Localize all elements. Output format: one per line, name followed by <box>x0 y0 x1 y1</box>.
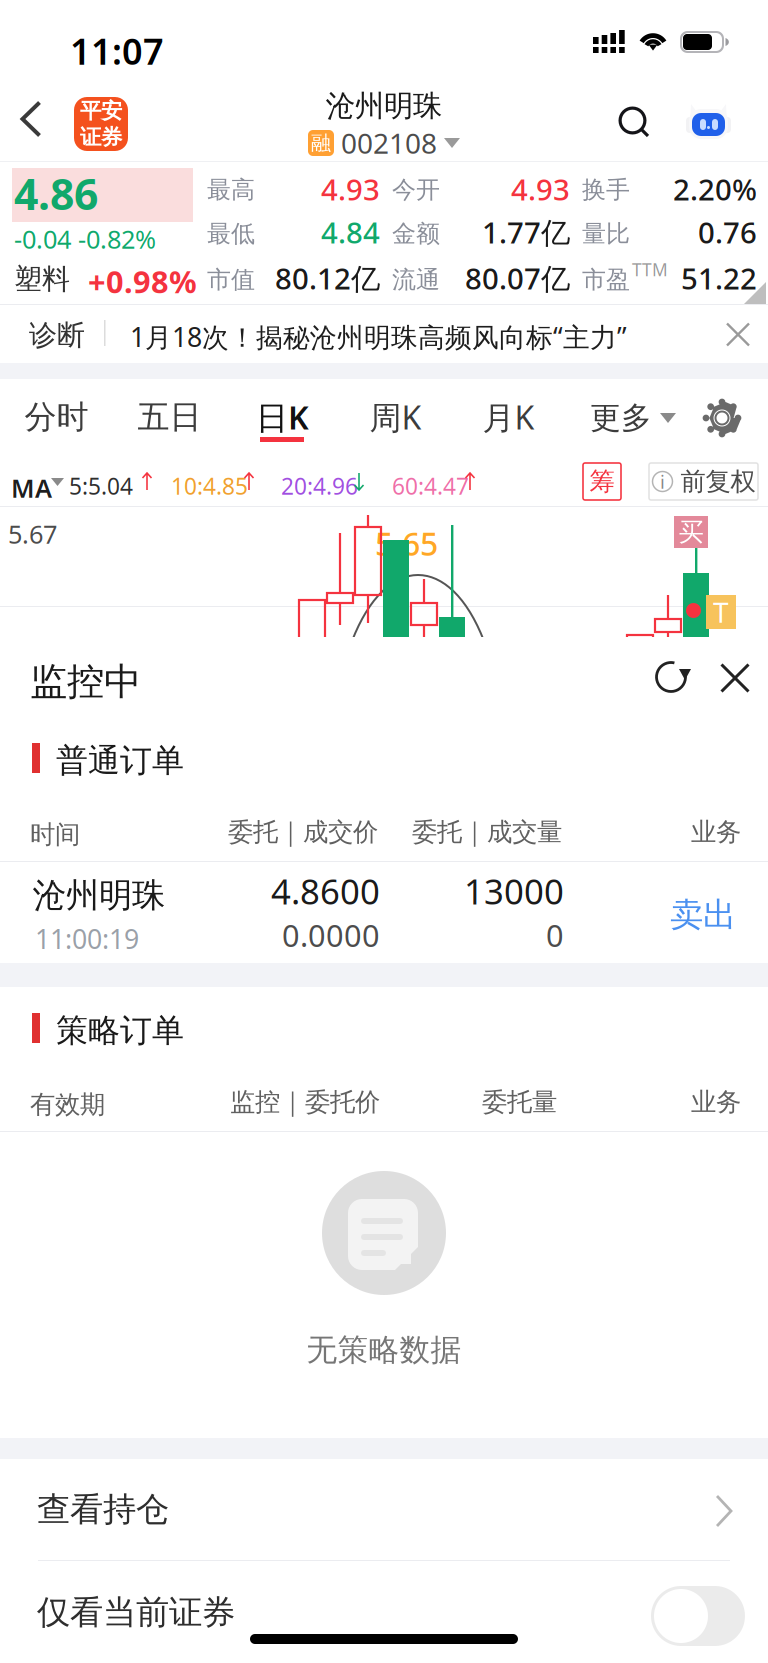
staticText: 诊断 <box>29 318 85 352</box>
staticText: 80.12亿 <box>275 258 380 297</box>
staticText: 融 <box>311 131 331 155</box>
button[interactable]: 返回 <box>0 76 62 162</box>
staticText: 0.0000 <box>282 915 380 955</box>
staticText: +0.98% <box>88 261 197 302</box>
button[interactable]: 设置 <box>682 379 762 457</box>
staticText: 1月18次！揭秘沧州明珠高频风向标“主力” <box>130 319 627 354</box>
staticText: 最高 <box>207 175 255 204</box>
staticText: MA <box>11 471 52 505</box>
staticText: 市盈 <box>582 265 630 294</box>
staticText: T <box>713 593 729 631</box>
staticText: 5:5.04 <box>69 471 133 501</box>
staticText: 业务 <box>691 1086 741 1117</box>
staticText: 今开 <box>392 175 440 204</box>
button[interactable]: 搜索 <box>597 76 679 162</box>
button[interactable]: 仅看当前证券 <box>651 1586 745 1646</box>
staticText: 4.86 <box>14 165 98 222</box>
staticText: 13000 <box>464 868 564 914</box>
button[interactable]: 平安证券 <box>74 97 128 151</box>
staticText: 2.20% <box>673 169 757 208</box>
staticText: 金额 <box>392 219 440 248</box>
staticText: 0 <box>546 915 564 955</box>
button[interactable]: 智能助手 <box>661 76 743 162</box>
staticText: 前复权 <box>680 466 755 497</box>
staticText: 60:4.47 <box>392 471 469 501</box>
staticText: 换手 <box>582 175 630 204</box>
staticText: 沧州明珠 <box>33 875 165 916</box>
button[interactable]: 周K <box>339 379 452 457</box>
staticText: 塑料 <box>14 262 70 296</box>
staticText: 最低 <box>207 219 255 248</box>
button[interactable]: 刷新 <box>638 642 708 714</box>
button[interactable]: 沧州明珠 <box>0 867 768 963</box>
staticText: TTM <box>632 258 668 281</box>
staticText: 市值 <box>207 265 255 294</box>
staticText: 无策略数据 <box>306 1331 461 1369</box>
staticText: 时间 <box>30 819 80 850</box>
staticText: 10:4.85 <box>171 471 248 501</box>
staticText: 仅看当前证券 <box>37 1592 235 1633</box>
staticText: 11:00:19 <box>35 921 139 956</box>
staticText: i <box>660 469 665 494</box>
staticText: 监控｜委托价 <box>230 1086 380 1117</box>
staticText: 委托｜成交量 <box>412 816 562 847</box>
staticText: 5.67 <box>8 517 57 551</box>
button[interactable]: 更多 <box>568 379 698 457</box>
staticText: 4.84 <box>321 212 380 251</box>
staticText: 委托｜成交价 <box>228 816 378 847</box>
button[interactable]: 查看持仓 <box>0 1480 768 1581</box>
staticText: 4.93 <box>511 169 570 208</box>
button[interactable]: 关闭 <box>706 306 768 363</box>
staticText: 证券 <box>80 124 122 150</box>
staticText: 月K <box>482 396 534 438</box>
staticText: 5.65 <box>375 522 438 564</box>
staticText: 20:4.96 <box>281 471 358 501</box>
staticText: 平安 <box>80 98 122 124</box>
staticText: 分时 <box>24 397 88 437</box>
staticText: 80.07亿 <box>465 258 570 297</box>
staticText: 监控中 <box>30 659 141 705</box>
button[interactable]: 月K <box>452 379 565 457</box>
staticText: 筹 <box>589 466 614 497</box>
button[interactable]: 五日 <box>113 379 226 457</box>
staticText: 有效期 <box>30 1089 105 1120</box>
staticText: 买 <box>678 516 703 547</box>
staticText: 沧州明珠 <box>326 88 442 124</box>
staticText: 量比 <box>582 219 630 248</box>
staticText: 五日 <box>137 397 201 437</box>
staticText: 委托量 <box>482 1086 557 1117</box>
staticText: 业务 <box>691 816 741 847</box>
button[interactable]: 分时 <box>0 379 113 457</box>
staticText: 查看持仓 <box>37 1489 169 1530</box>
staticText: -0.04 -0.82% <box>14 222 156 256</box>
staticText: 11:07 <box>70 27 164 75</box>
staticText: 4.93 <box>321 169 380 208</box>
staticText: 1.77亿 <box>482 212 570 251</box>
staticText: 流通 <box>392 265 440 294</box>
button[interactable]: 筹 <box>583 463 621 500</box>
staticText: 51.22 <box>681 258 757 297</box>
button[interactable]: 日K <box>226 379 339 457</box>
staticText: 4.8600 <box>271 868 380 914</box>
staticText: 更多 <box>590 399 652 437</box>
staticText: 普通订单 <box>56 741 184 780</box>
staticText: 卖出 <box>670 894 736 935</box>
staticText: 日K <box>256 396 309 438</box>
button[interactable]: i <box>649 463 758 500</box>
staticText: 周K <box>369 396 421 438</box>
button[interactable]: 关闭 <box>700 642 768 714</box>
staticText: 0.76 <box>698 212 757 251</box>
staticText: 策略订单 <box>56 1011 184 1050</box>
staticText: 002108 <box>341 124 437 162</box>
